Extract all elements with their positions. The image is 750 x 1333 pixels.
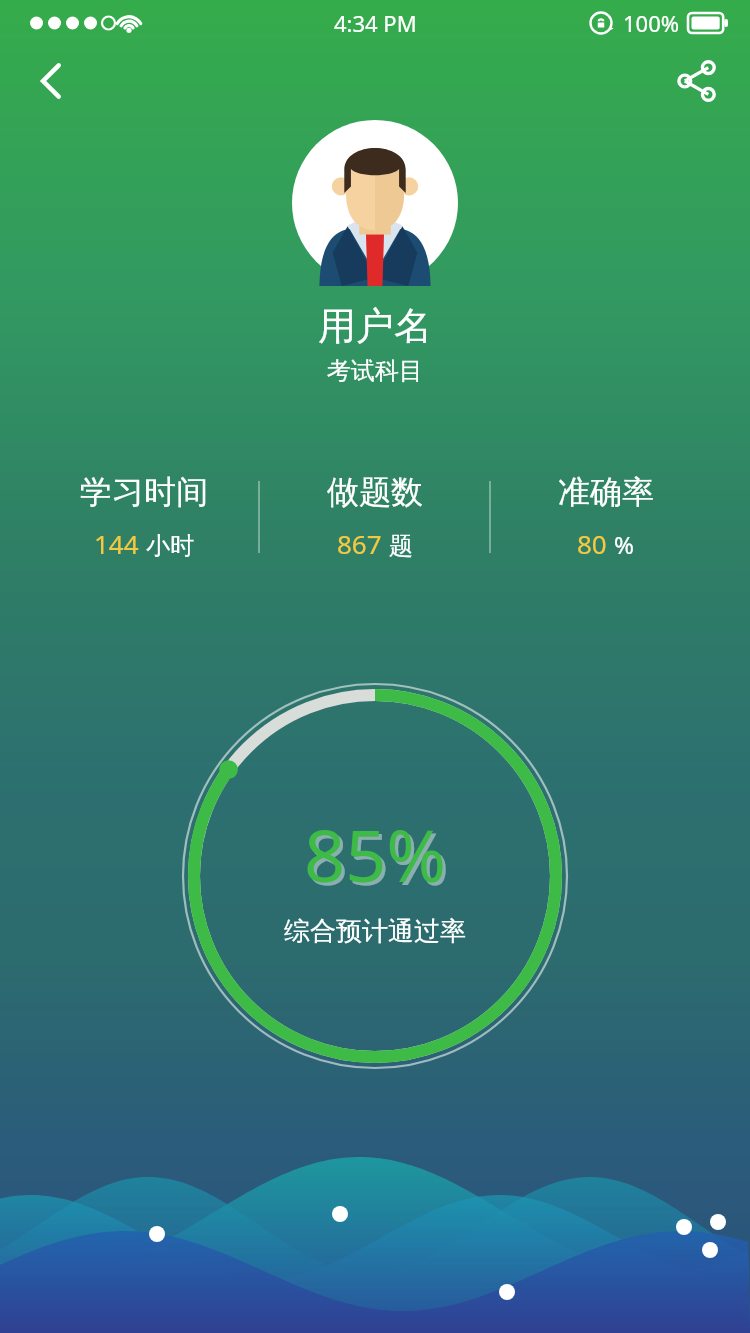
button[interactable]: Share [668, 53, 724, 109]
staticText: 85% [307, 808, 450, 906]
staticText: 准确率 [558, 472, 654, 512]
staticText: 做题数 [327, 472, 423, 512]
staticText: 867 [337, 526, 382, 561]
staticText: 综合预计通过率 [284, 915, 466, 948]
staticText: 学习时间 [80, 472, 208, 512]
staticText: 考试科目 [0, 356, 750, 386]
staticText: 144 [94, 526, 139, 561]
button[interactable]: 做题数 [260, 472, 489, 561]
staticText: 4:34 PM [334, 8, 417, 38]
staticText: 题 [389, 531, 413, 561]
staticText: 用户名 [0, 302, 750, 350]
button[interactable]: 准确率 [491, 472, 720, 561]
staticText: 100% [623, 8, 680, 38]
staticText: 小时 [146, 531, 194, 561]
staticText: % [614, 528, 634, 561]
button[interactable]: 学习时间 [30, 472, 258, 561]
staticText: 85% [304, 805, 447, 903]
button[interactable]: Back [24, 53, 80, 109]
staticText: 80 [577, 526, 607, 561]
